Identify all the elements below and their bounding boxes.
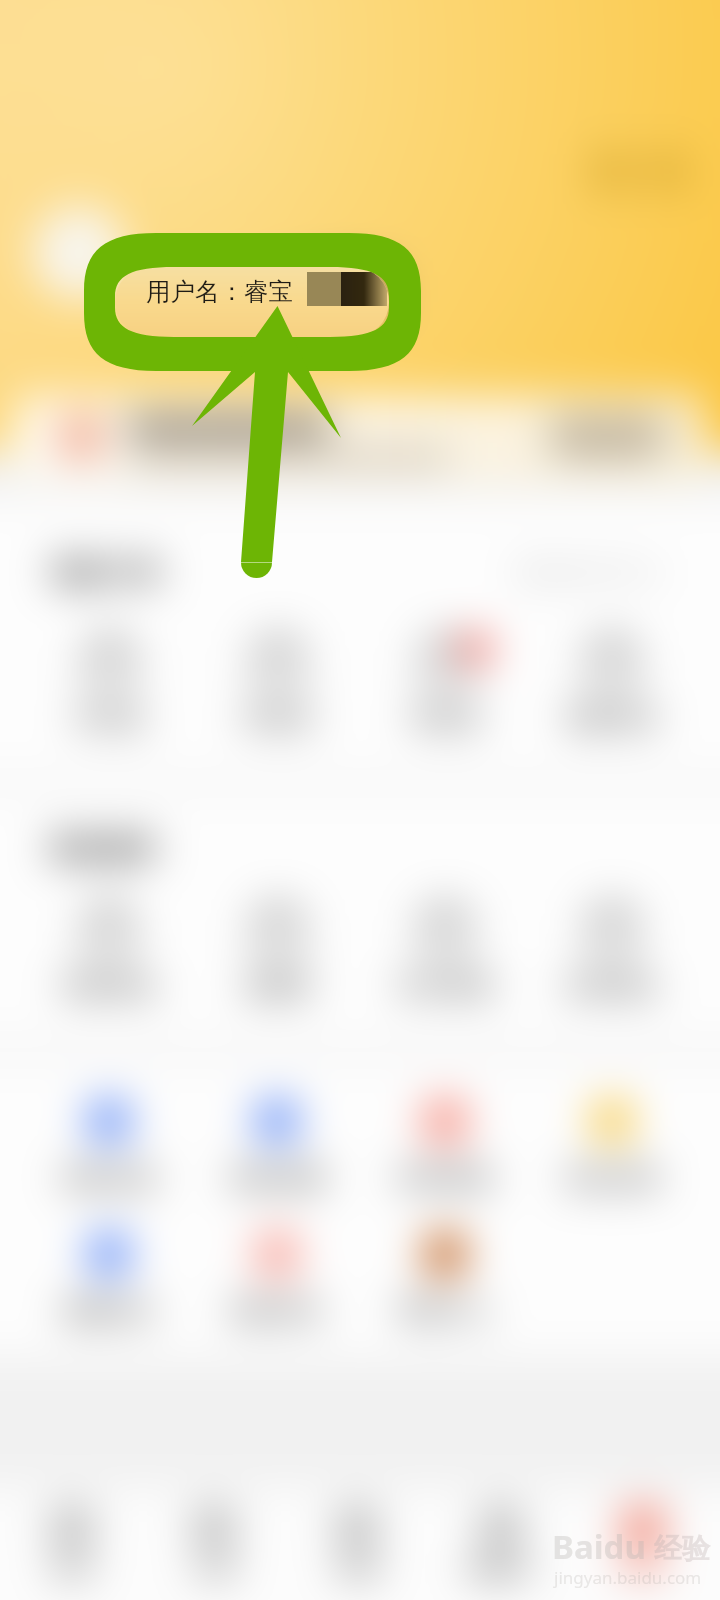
button[interactable]: 发现 bbox=[295, 1496, 419, 1596]
staticText: 首页 bbox=[51, 1556, 93, 1582]
button[interactable]: 我的足迹 bbox=[25, 1098, 193, 1224]
staticText: 邀请好友 bbox=[63, 1297, 155, 1326]
button[interactable] bbox=[16, 396, 704, 480]
button[interactable]: 退款售后 bbox=[528, 616, 696, 756]
staticText: 退款售后 bbox=[566, 704, 658, 733]
staticText: 分类 bbox=[193, 1556, 235, 1582]
staticText: 我的钱包 bbox=[63, 972, 155, 1001]
staticText: 用户名：睿宝 bbox=[148, 270, 316, 305]
staticText: 购物车 bbox=[469, 1556, 532, 1582]
staticText: 用户名：睿宝 bbox=[146, 276, 293, 307]
button[interactable]: 首页 bbox=[10, 1496, 134, 1596]
button[interactable]: 待付款 bbox=[25, 616, 193, 756]
button[interactable]: Avatar bbox=[32, 206, 126, 300]
staticText: 帮助中心 bbox=[399, 1297, 491, 1326]
button[interactable]: 待收货 bbox=[361, 616, 529, 756]
staticText: 联系客服 bbox=[399, 1164, 491, 1193]
button[interactable]: 待发货 bbox=[193, 616, 361, 756]
button[interactable]: 我的 bbox=[581, 1496, 705, 1596]
button[interactable]: 我的收藏 bbox=[193, 1098, 361, 1224]
staticText: 我的订单 bbox=[52, 556, 160, 590]
staticText: Baidu bbox=[552, 1524, 646, 1569]
button[interactable]: 意见反馈 bbox=[528, 1098, 696, 1224]
button[interactable]: 分类 bbox=[152, 1496, 276, 1596]
staticText: 经验 bbox=[654, 1531, 710, 1566]
staticText: 积分商城 bbox=[399, 972, 491, 1001]
staticText: 收货地址 bbox=[566, 972, 658, 1001]
staticText: 意见反馈 bbox=[566, 1164, 658, 1193]
button[interactable]: 收货地址 bbox=[528, 884, 696, 1024]
button[interactable]: 邀请好友 bbox=[25, 1231, 193, 1357]
staticText: 我的 bbox=[622, 1556, 664, 1582]
button[interactable]: 我的评价 bbox=[193, 1231, 361, 1357]
staticText: 我的收藏 bbox=[231, 1164, 323, 1193]
staticText: 发现 bbox=[336, 1556, 378, 1582]
button[interactable]: 帮助中心 bbox=[361, 1231, 529, 1357]
button[interactable]: Open VIP bbox=[548, 416, 666, 458]
staticText: 待付款 bbox=[75, 704, 144, 733]
staticText: 我的评价 bbox=[231, 1297, 323, 1326]
button[interactable]: 联系客服 bbox=[361, 1098, 529, 1224]
button[interactable]: 积分商城 bbox=[361, 884, 529, 1024]
staticText: 我的服务 bbox=[50, 832, 158, 866]
staticText: jingyan.baidu.com bbox=[554, 1566, 702, 1589]
staticText: 优惠券 bbox=[243, 972, 312, 1001]
button[interactable]: 购物车 bbox=[438, 1496, 562, 1596]
staticText: 待收货 bbox=[411, 704, 480, 733]
button[interactable]: 我的钱包 bbox=[25, 884, 193, 1024]
staticText: 我的足迹 bbox=[63, 1164, 155, 1193]
button[interactable]: 优惠券 bbox=[193, 884, 361, 1024]
staticText: 待发货 bbox=[243, 704, 312, 733]
